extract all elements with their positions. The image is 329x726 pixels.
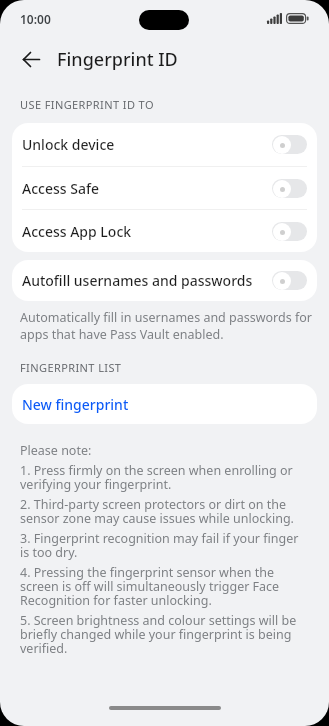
staticText: FINGERPRINT LIST [20,360,122,375]
button[interactable]: Access Safe [12,167,317,209]
staticText: Access App Lock [22,222,132,241]
staticText: Access Safe [22,179,99,198]
staticText: New fingerprint [22,395,129,414]
button[interactable]: New fingerprint [12,384,317,424]
staticText: 4. Pressing the fingerprint sensor when … [20,564,280,609]
staticText: Automatically fill in usernames and pass… [20,309,312,343]
staticText: Please note: [20,442,92,459]
staticText: 5. Screen brightness and colour settings… [20,612,297,657]
button[interactable]: Autofill usernames and passwords [12,260,317,301]
staticText: 1. Press firmly on the screen when enrol… [20,462,293,493]
staticText: USE FINGERPRINT ID TO [20,97,154,112]
button[interactable] [15,43,47,75]
staticText: Autofill usernames and passwords [22,271,253,290]
staticText: Unlock device [22,135,115,154]
button[interactable]: Access App Lock [12,210,317,252]
staticText: 3. Fingerprint recognition may fail if y… [20,530,299,561]
staticText: 10:00 [20,11,51,27]
staticText: Fingerprint ID [57,47,178,72]
button[interactable]: Unlock device [12,123,317,166]
staticText: 2. Third-party screen protectors or dirt… [20,496,294,527]
